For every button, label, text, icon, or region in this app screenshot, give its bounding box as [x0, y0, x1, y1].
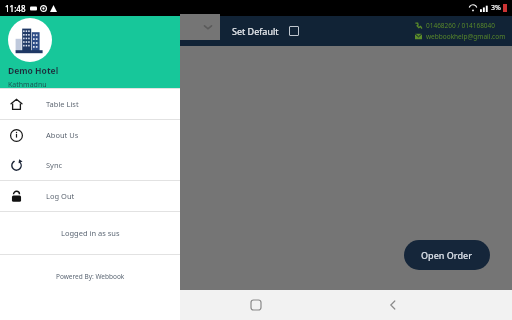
staticText: webbookhelp@gmail.com	[426, 32, 506, 41]
button[interactable]: Select option	[180, 14, 220, 40]
button[interactable]: Sync	[0, 150, 180, 180]
button[interactable]: Set Default checkbox	[289, 26, 299, 36]
staticText: 3%	[491, 3, 501, 13]
button[interactable]: Home	[239, 290, 273, 320]
staticText: About Us	[46, 130, 79, 140]
staticText: Open Order	[421, 249, 473, 261]
staticText: Logged in as sus	[61, 228, 120, 238]
staticText: Demo Hotel	[8, 65, 59, 77]
button[interactable]: About Us	[0, 120, 180, 150]
button[interactable]: Logged in as sus	[0, 212, 180, 254]
staticText: Set Default	[232, 25, 279, 37]
staticText: Log Out	[46, 191, 75, 201]
staticText: 01468260 / 014168040	[426, 21, 496, 30]
staticText: Sync	[46, 160, 63, 170]
button[interactable]: Log Out	[0, 181, 180, 211]
staticText: Kathmadnu	[8, 80, 47, 88]
button[interactable]: Back	[376, 290, 410, 320]
button[interactable]: Table List	[0, 89, 180, 119]
staticText: Table List	[46, 99, 79, 109]
staticText: Powered By: Webbook	[56, 272, 125, 281]
button[interactable]: Open Order	[404, 240, 490, 270]
staticText: 11:48	[5, 3, 26, 14]
